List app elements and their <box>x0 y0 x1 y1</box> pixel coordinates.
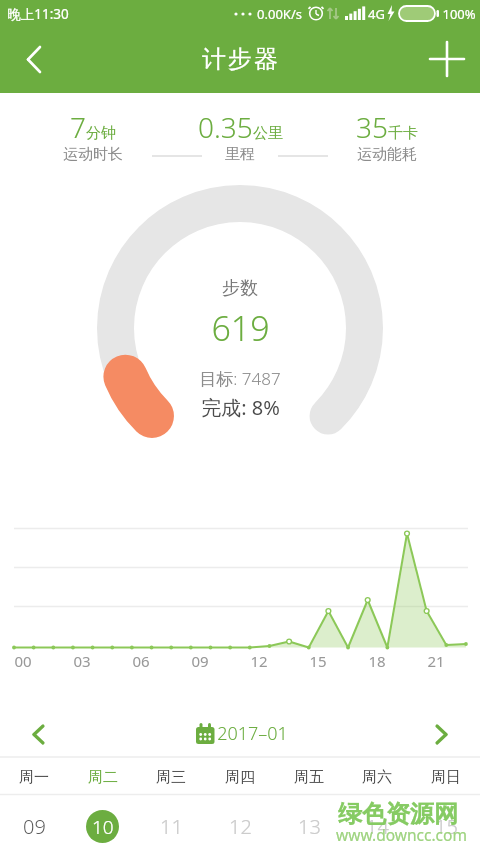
button[interactable]: 12 <box>215 809 265 843</box>
staticText: 0.35 <box>198 108 253 146</box>
staticText: 周一 <box>19 768 49 787</box>
staticText: 18 <box>368 651 386 671</box>
staticText: 100% <box>442 5 476 23</box>
staticText: 4G <box>368 5 385 23</box>
button[interactable]: 2017–01 <box>197 718 307 748</box>
staticText: 03 <box>73 651 91 671</box>
button[interactable]: 周三 <box>141 762 201 792</box>
staticText: 2017–01 <box>217 721 288 746</box>
staticText: 21 <box>427 651 445 671</box>
button[interactable]: 周日 <box>416 762 476 792</box>
button[interactable]: 周四 <box>210 762 270 792</box>
staticText: 12 <box>229 813 252 840</box>
button[interactable]: 14 <box>352 809 402 843</box>
staticText: 12 <box>250 651 268 671</box>
staticText: 周六 <box>362 768 392 787</box>
staticText: 目标: 7487 <box>199 367 281 390</box>
staticText: 周五 <box>294 768 324 787</box>
button[interactable] <box>422 35 472 85</box>
button[interactable]: 周二 <box>73 762 133 792</box>
staticText: 09 <box>191 651 209 671</box>
button[interactable]: 10 <box>86 810 119 843</box>
staticText: 14 <box>366 813 389 840</box>
button[interactable] <box>10 35 60 85</box>
staticText: 计步器 <box>201 44 279 74</box>
button[interactable] <box>420 714 462 756</box>
staticText: 06 <box>132 651 150 671</box>
staticText: 里程 <box>225 145 255 164</box>
staticText: 00 <box>14 651 32 671</box>
staticText: 绿色资源网 <box>338 799 458 829</box>
staticText: 分钟 <box>86 124 116 143</box>
staticText: 15 <box>309 651 327 671</box>
staticText: www.downcc.com <box>336 824 467 845</box>
staticText: 619 <box>211 305 270 351</box>
button[interactable]: 15 <box>421 809 471 843</box>
button[interactable]: 周一 <box>4 762 64 792</box>
staticText: 千卡 <box>388 124 418 143</box>
staticText: 周二 <box>88 768 118 787</box>
staticText: 步数 <box>222 277 258 300</box>
button[interactable]: 周五 <box>279 762 339 792</box>
staticText: 完成: 8% <box>201 394 280 421</box>
staticText: 7 <box>70 108 86 146</box>
staticText: 10 <box>92 814 114 840</box>
staticText: 公里 <box>253 124 283 143</box>
staticText: 晚上11:30 <box>7 5 69 23</box>
staticText: 周三 <box>156 768 186 787</box>
button[interactable]: 09 <box>9 809 59 843</box>
button[interactable]: 11 <box>146 809 196 843</box>
button[interactable]: 13 <box>284 809 334 843</box>
button[interactable] <box>18 714 60 756</box>
staticText: 周日 <box>431 768 461 787</box>
staticText: 周四 <box>225 768 255 787</box>
staticText: 15 <box>435 813 458 840</box>
staticText: 11 <box>160 813 183 840</box>
staticText: 运动时长 <box>63 145 123 164</box>
staticText: 0.00K/s <box>257 5 302 23</box>
staticText: 13 <box>298 813 321 840</box>
staticText: 09 <box>23 813 46 840</box>
button[interactable]: 周六 <box>347 762 407 792</box>
staticText: 运动能耗 <box>357 145 417 164</box>
staticText: 35 <box>356 108 388 146</box>
